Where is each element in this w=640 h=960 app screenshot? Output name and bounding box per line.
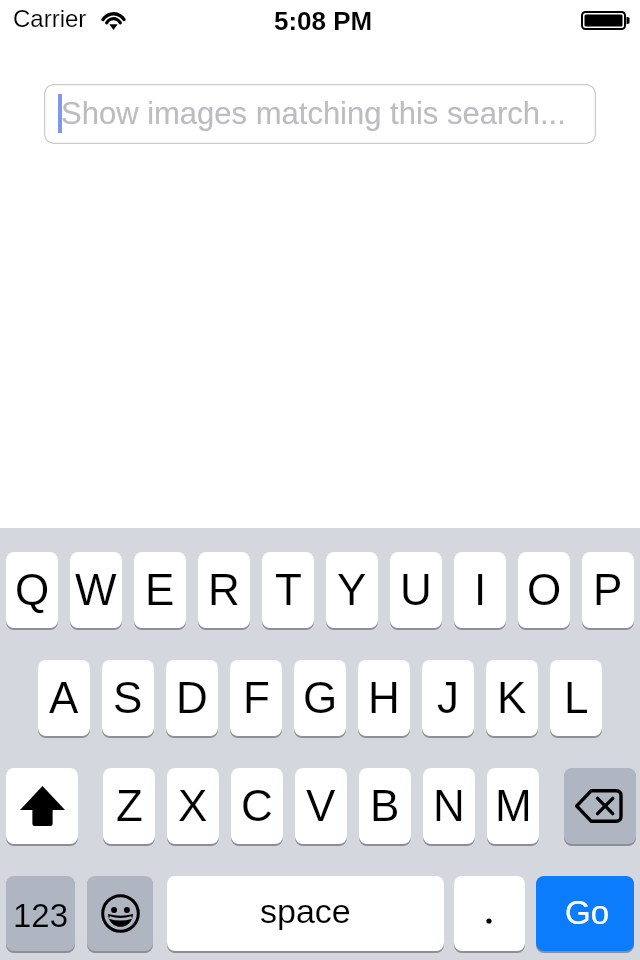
staticText: F bbox=[243, 673, 270, 722]
staticText: N bbox=[433, 781, 465, 830]
staticText: M bbox=[495, 781, 532, 830]
staticText: S bbox=[113, 673, 143, 722]
staticText: D bbox=[176, 673, 208, 722]
button[interactable]: I bbox=[454, 552, 506, 630]
staticText: X bbox=[178, 781, 208, 830]
staticText: Go bbox=[565, 894, 610, 931]
button[interactable]: G bbox=[294, 660, 346, 738]
staticText: R bbox=[208, 565, 240, 614]
staticText: 5:08 PM bbox=[274, 6, 373, 35]
button[interactable]: Q bbox=[6, 552, 58, 630]
staticText: T bbox=[275, 565, 302, 614]
button[interactable]: B bbox=[359, 768, 411, 846]
staticText: Q bbox=[15, 565, 50, 614]
button[interactable]: X bbox=[167, 768, 219, 846]
button[interactable]: F bbox=[230, 660, 282, 738]
button[interactable]: Z bbox=[103, 768, 155, 846]
staticText: K bbox=[497, 673, 527, 722]
button[interactable]: L bbox=[550, 660, 602, 738]
staticText: A bbox=[49, 673, 79, 722]
button[interactable]: H bbox=[358, 660, 410, 738]
button[interactable]: P bbox=[582, 552, 634, 630]
button[interactable]: Show images matching this search... bbox=[44, 84, 596, 144]
button[interactable]: A bbox=[38, 660, 90, 738]
staticText: C bbox=[241, 781, 273, 830]
staticText: Carrier bbox=[13, 5, 87, 32]
staticText: I bbox=[474, 565, 487, 614]
button[interactable]: Backspace bbox=[564, 768, 636, 846]
staticText: G bbox=[303, 673, 338, 722]
staticText: Show images matching this search... bbox=[61, 96, 566, 131]
staticText: P bbox=[593, 565, 623, 614]
other: Battery full bbox=[581, 11, 633, 30]
staticText: O bbox=[527, 565, 562, 614]
button[interactable]: Period bbox=[454, 876, 525, 953]
button[interactable]: J bbox=[422, 660, 474, 738]
staticText: B bbox=[370, 781, 400, 830]
staticText: Y bbox=[337, 565, 367, 614]
button[interactable]: D bbox=[166, 660, 218, 738]
staticText: E bbox=[145, 565, 175, 614]
button[interactable]: 123 bbox=[6, 876, 75, 953]
button[interactable]: Go bbox=[536, 876, 634, 953]
button[interactable]: Emoji bbox=[87, 876, 153, 953]
button[interactable]: W bbox=[70, 552, 122, 630]
button[interactable]: Y bbox=[326, 552, 378, 630]
button[interactable]: T bbox=[262, 552, 314, 630]
button[interactable]: C bbox=[231, 768, 283, 846]
button[interactable]: M bbox=[487, 768, 539, 846]
staticText: V bbox=[306, 781, 336, 830]
button[interactable]: R bbox=[198, 552, 250, 630]
button[interactable]: U bbox=[390, 552, 442, 630]
staticText: space bbox=[260, 892, 351, 930]
staticText: L bbox=[564, 673, 589, 722]
other: Wi-Fi bbox=[100, 10, 127, 31]
button[interactable]: space bbox=[167, 876, 444, 953]
staticText: J bbox=[437, 673, 459, 722]
button[interactable]: V bbox=[295, 768, 347, 846]
staticText: W bbox=[75, 565, 117, 614]
staticText: 123 bbox=[13, 897, 69, 934]
button[interactable]: K bbox=[486, 660, 538, 738]
staticText: H bbox=[368, 673, 400, 722]
button[interactable]: Shift bbox=[6, 768, 78, 846]
staticText: Z bbox=[116, 781, 143, 830]
button[interactable]: S bbox=[102, 660, 154, 738]
button[interactable]: O bbox=[518, 552, 570, 630]
button[interactable]: E bbox=[134, 552, 186, 630]
staticText: U bbox=[400, 565, 432, 614]
button[interactable]: N bbox=[423, 768, 475, 846]
